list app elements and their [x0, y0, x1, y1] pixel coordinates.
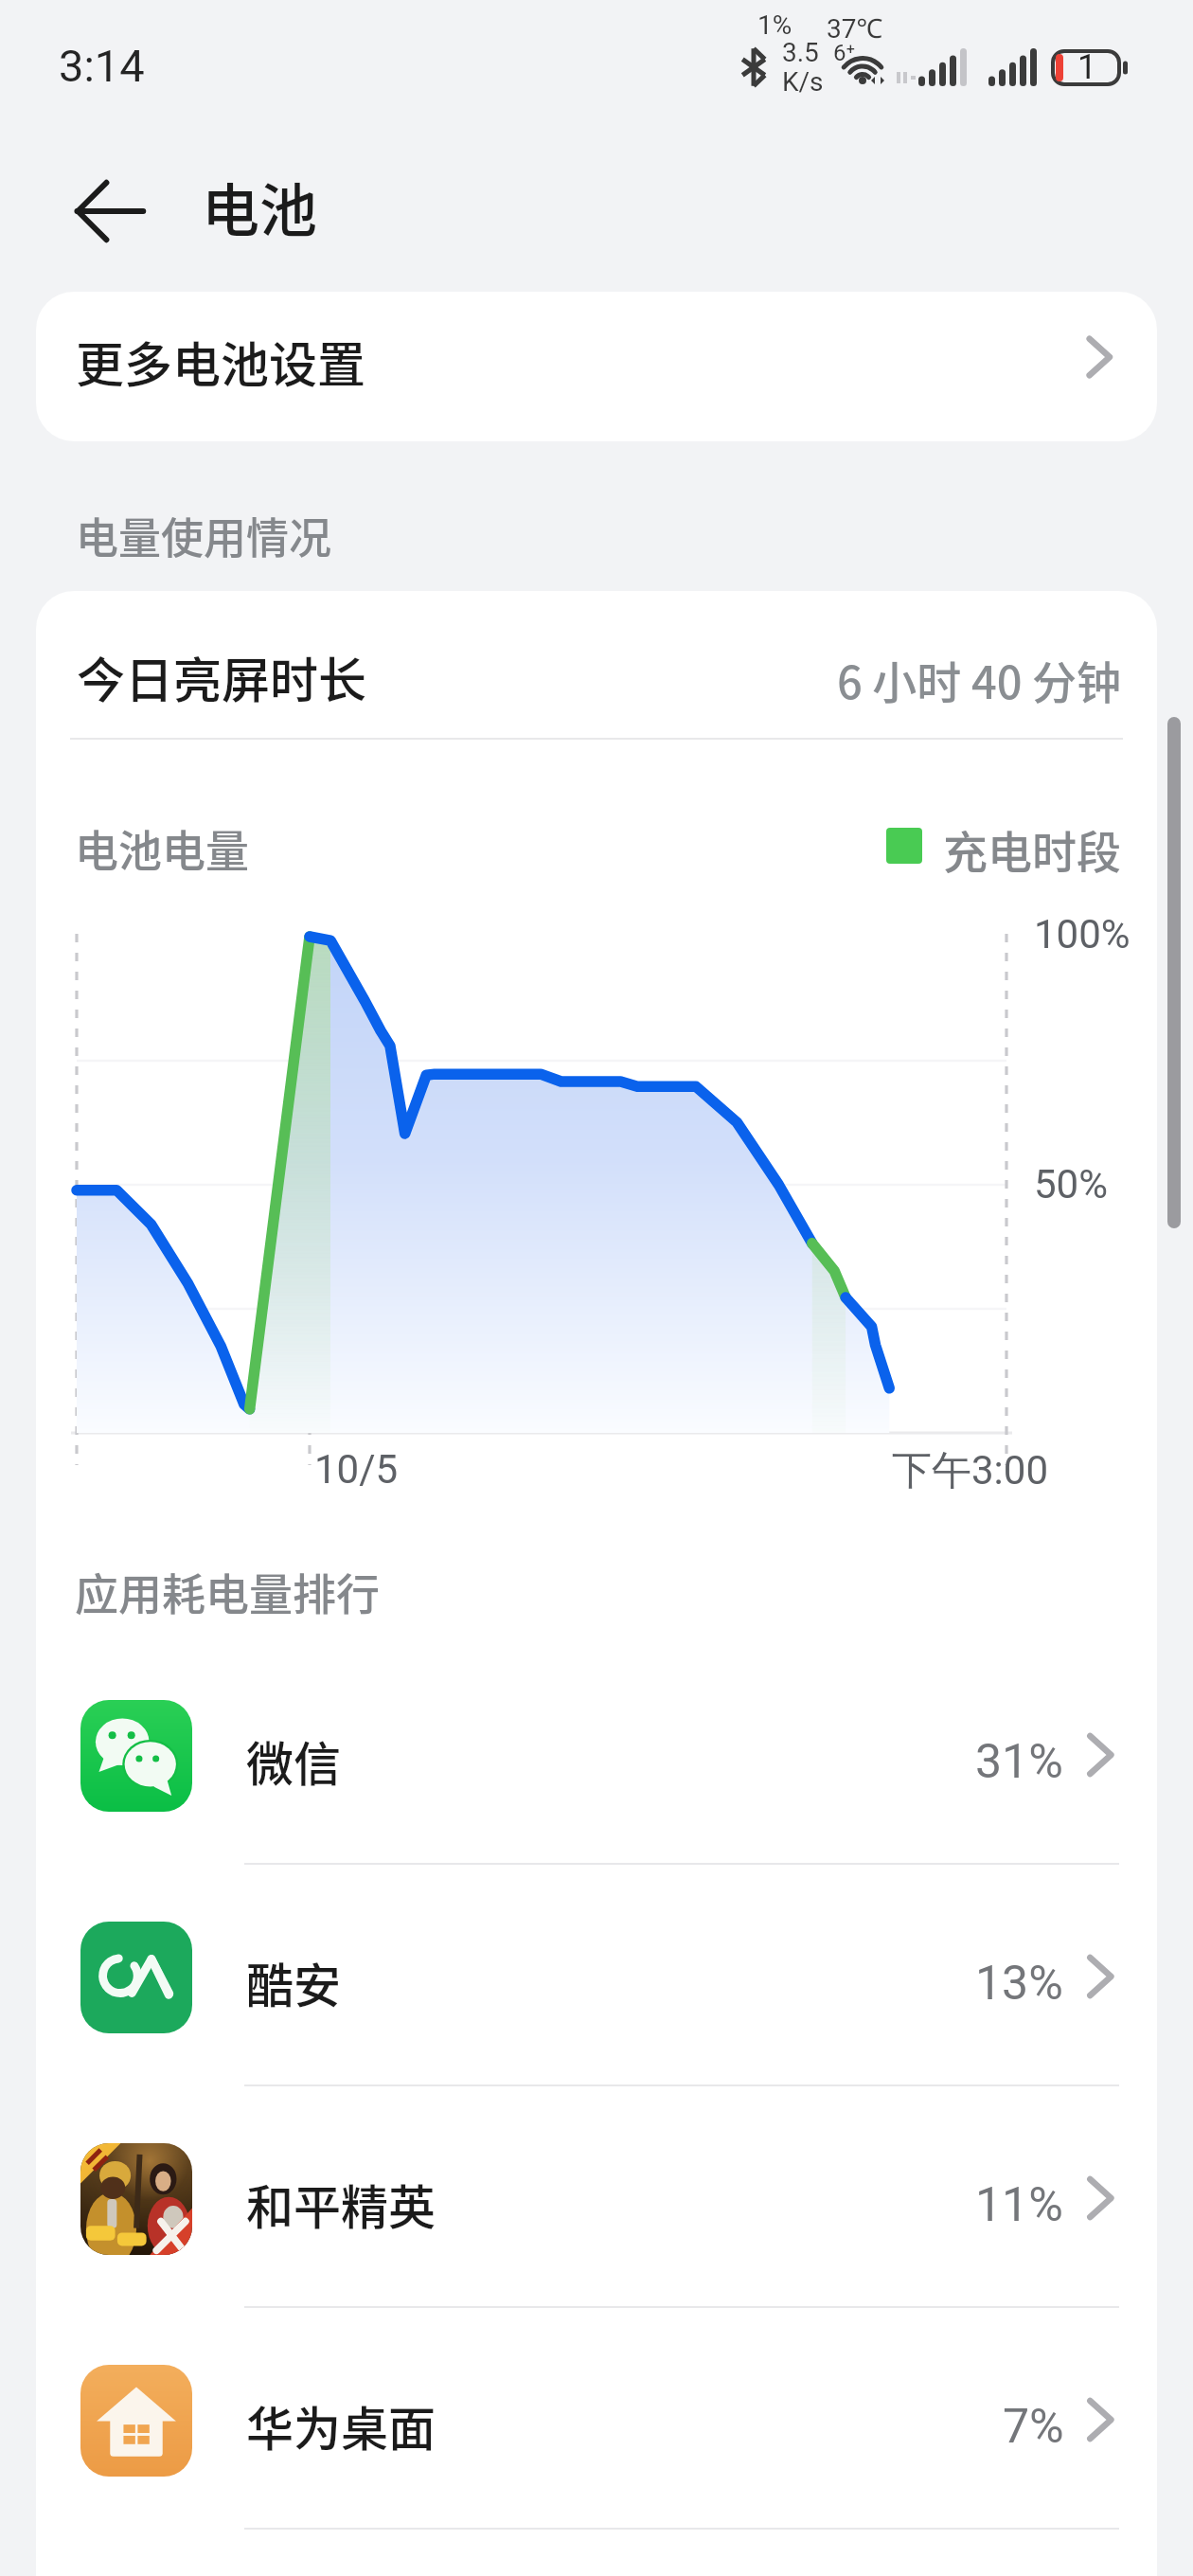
button[interactable]: Back: [55, 156, 165, 266]
staticText: 应用耗电量排行: [75, 1560, 380, 1623]
staticText: 6 小时 40 分钟: [837, 647, 1122, 711]
staticText: 100%: [1034, 911, 1131, 957]
staticText: 今日亮屏时长: [77, 642, 367, 712]
staticText: 11%: [975, 2177, 1063, 2233]
staticText: 50%: [1034, 1161, 1108, 1207]
button[interactable]: 微信: [36, 1645, 1157, 1867]
staticText: 13%: [975, 1956, 1063, 2012]
staticText: 37℃: [827, 9, 883, 45]
staticText: 华为桌面: [246, 2391, 436, 2460]
button[interactable]: 更多电池设置: [36, 292, 1157, 441]
staticText: 更多电池设置: [76, 327, 366, 397]
staticText: 3:14: [59, 40, 145, 92]
staticText: 电量使用情况: [76, 505, 332, 566]
staticText: 10/5: [314, 1446, 399, 1493]
staticText: 1: [1077, 47, 1097, 87]
staticText: 电池: [202, 165, 318, 248]
staticText: 3.5 K/s: [782, 37, 824, 97]
staticText: 下午3:00: [892, 1446, 1048, 1496]
staticText: 7%: [1003, 2399, 1064, 2455]
staticText: 和平精英: [246, 2170, 436, 2238]
button[interactable]: 华为桌面: [36, 2310, 1157, 2531]
button[interactable]: 酷安: [36, 1867, 1157, 2088]
staticText: 酷安: [246, 1948, 341, 2016]
staticText: 31%: [975, 1734, 1063, 1790]
staticText: 充电时段: [943, 816, 1121, 881]
staticText: 电池电量: [75, 816, 249, 880]
staticText: 1%: [757, 9, 792, 41]
staticText: 微信: [246, 1726, 341, 1795]
staticText: 6⁺: [833, 40, 856, 66]
button[interactable]: 和平精英: [36, 2088, 1157, 2310]
